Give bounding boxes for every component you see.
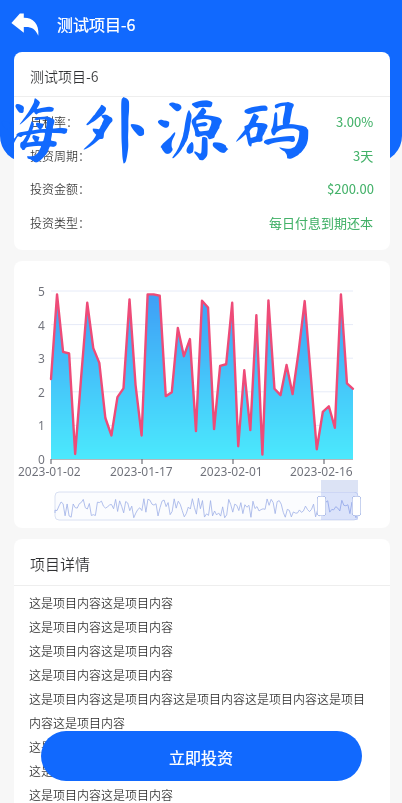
staticText: 3 [38, 350, 45, 366]
button[interactable]: 立即投资 [41, 731, 362, 781]
staticText: 每日付息到期还本 [269, 213, 374, 232]
staticText: 日利率： [30, 113, 79, 130]
staticText: 2023-02-16 [290, 463, 353, 479]
staticText: 0 [38, 451, 45, 467]
staticText: 投资周期： [30, 147, 91, 164]
staticText: 投资类型： [30, 214, 91, 231]
staticText: 2023-01-17 [110, 463, 173, 479]
staticText: 2023-01-02 [18, 463, 81, 479]
button[interactable]: Back [5, 4, 45, 44]
staticText: 3.00% [336, 112, 374, 131]
button[interactable]: Data zoom slider [55, 492, 358, 520]
staticText: 5 [38, 283, 45, 299]
staticText: 2023-02-01 [200, 463, 263, 479]
staticText: $200.00 [327, 179, 374, 198]
staticText: 测试项目-6 [30, 66, 99, 86]
staticText: 项目详情 [30, 553, 91, 575]
staticText: 这是项目内容这是项目内容 这是项目内容这是项目内容 这是项目内容这是项目内容 这… [29, 594, 375, 803]
staticText: 海外源码 [0, 94, 312, 164]
staticText: 投资金额： [30, 180, 91, 197]
staticText: 立即投资 [169, 745, 234, 768]
staticText: 2 [38, 384, 45, 400]
staticText: 测试项目-6 [57, 12, 136, 35]
staticText: 4 [38, 317, 45, 333]
staticText: 3天 [353, 146, 374, 165]
staticText: 1 [38, 417, 45, 433]
